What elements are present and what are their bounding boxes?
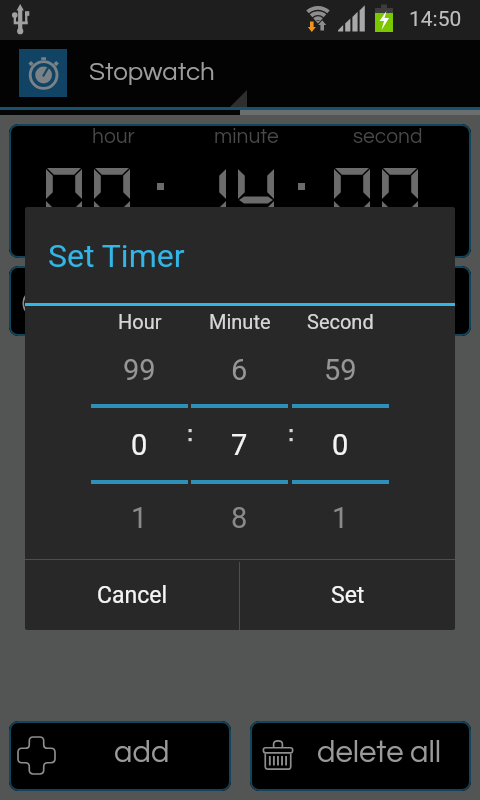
button[interactable]: Stopwatch app icon [19,49,67,97]
staticText: 14:50 [409,7,462,32]
button[interactable]: Cancel [25,560,239,630]
button[interactable]: 99 [91,335,188,535]
staticText: Second [307,310,374,333]
staticText: add [114,737,170,769]
staticText: 8 [231,501,248,535]
staticText: Hour [118,310,162,333]
staticText: Set [331,582,365,609]
button[interactable]: 6 [191,335,288,535]
staticText: Minute [209,310,271,333]
staticText: 7 [231,428,248,462]
staticText: second [353,126,423,148]
button[interactable]: 59 [292,335,389,535]
staticText: 59 [324,353,357,387]
button[interactable]: Start [9,266,471,336]
staticText: 1 [332,501,349,535]
button[interactable]: delete all [250,721,471,791]
staticText: 0 [131,428,148,462]
staticText: minute [214,126,279,148]
staticText: Stopwatch [89,59,215,86]
staticText: 99 [123,353,156,387]
staticText: Cancel [97,582,168,609]
staticText: 1 [131,501,148,535]
staticText: hour [92,126,135,148]
staticText: delete all [317,737,442,769]
staticText: Set Timer [48,237,185,275]
staticText: start [114,282,178,314]
button[interactable]: hour [9,124,471,258]
button[interactable]: add [9,721,231,791]
button[interactable]: Set [240,560,455,630]
staticText: 6 [231,353,248,387]
staticText: 0 [332,428,349,462]
